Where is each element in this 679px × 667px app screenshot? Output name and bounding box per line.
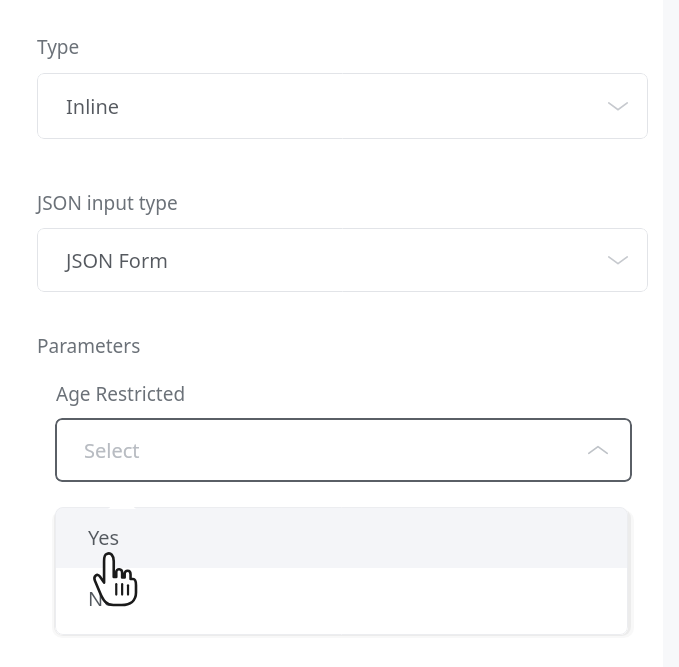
staticText: JSON input type (37, 190, 178, 216)
button[interactable]: Yes (55, 507, 628, 568)
staticText: JSON Form (66, 247, 168, 274)
staticText: Select (84, 437, 140, 464)
staticText: Yes (88, 524, 120, 551)
button[interactable]: No (55, 568, 628, 629)
staticText: Inline (66, 93, 120, 120)
staticText: Age Restricted (56, 381, 186, 407)
button[interactable]: Inline (37, 73, 648, 139)
button[interactable]: Select (55, 418, 632, 482)
staticText: Parameters (37, 333, 141, 359)
staticText: Type (37, 34, 80, 60)
button[interactable]: JSON Form (37, 228, 648, 292)
other: Pointer (94, 553, 136, 605)
staticText: No (88, 585, 116, 612)
